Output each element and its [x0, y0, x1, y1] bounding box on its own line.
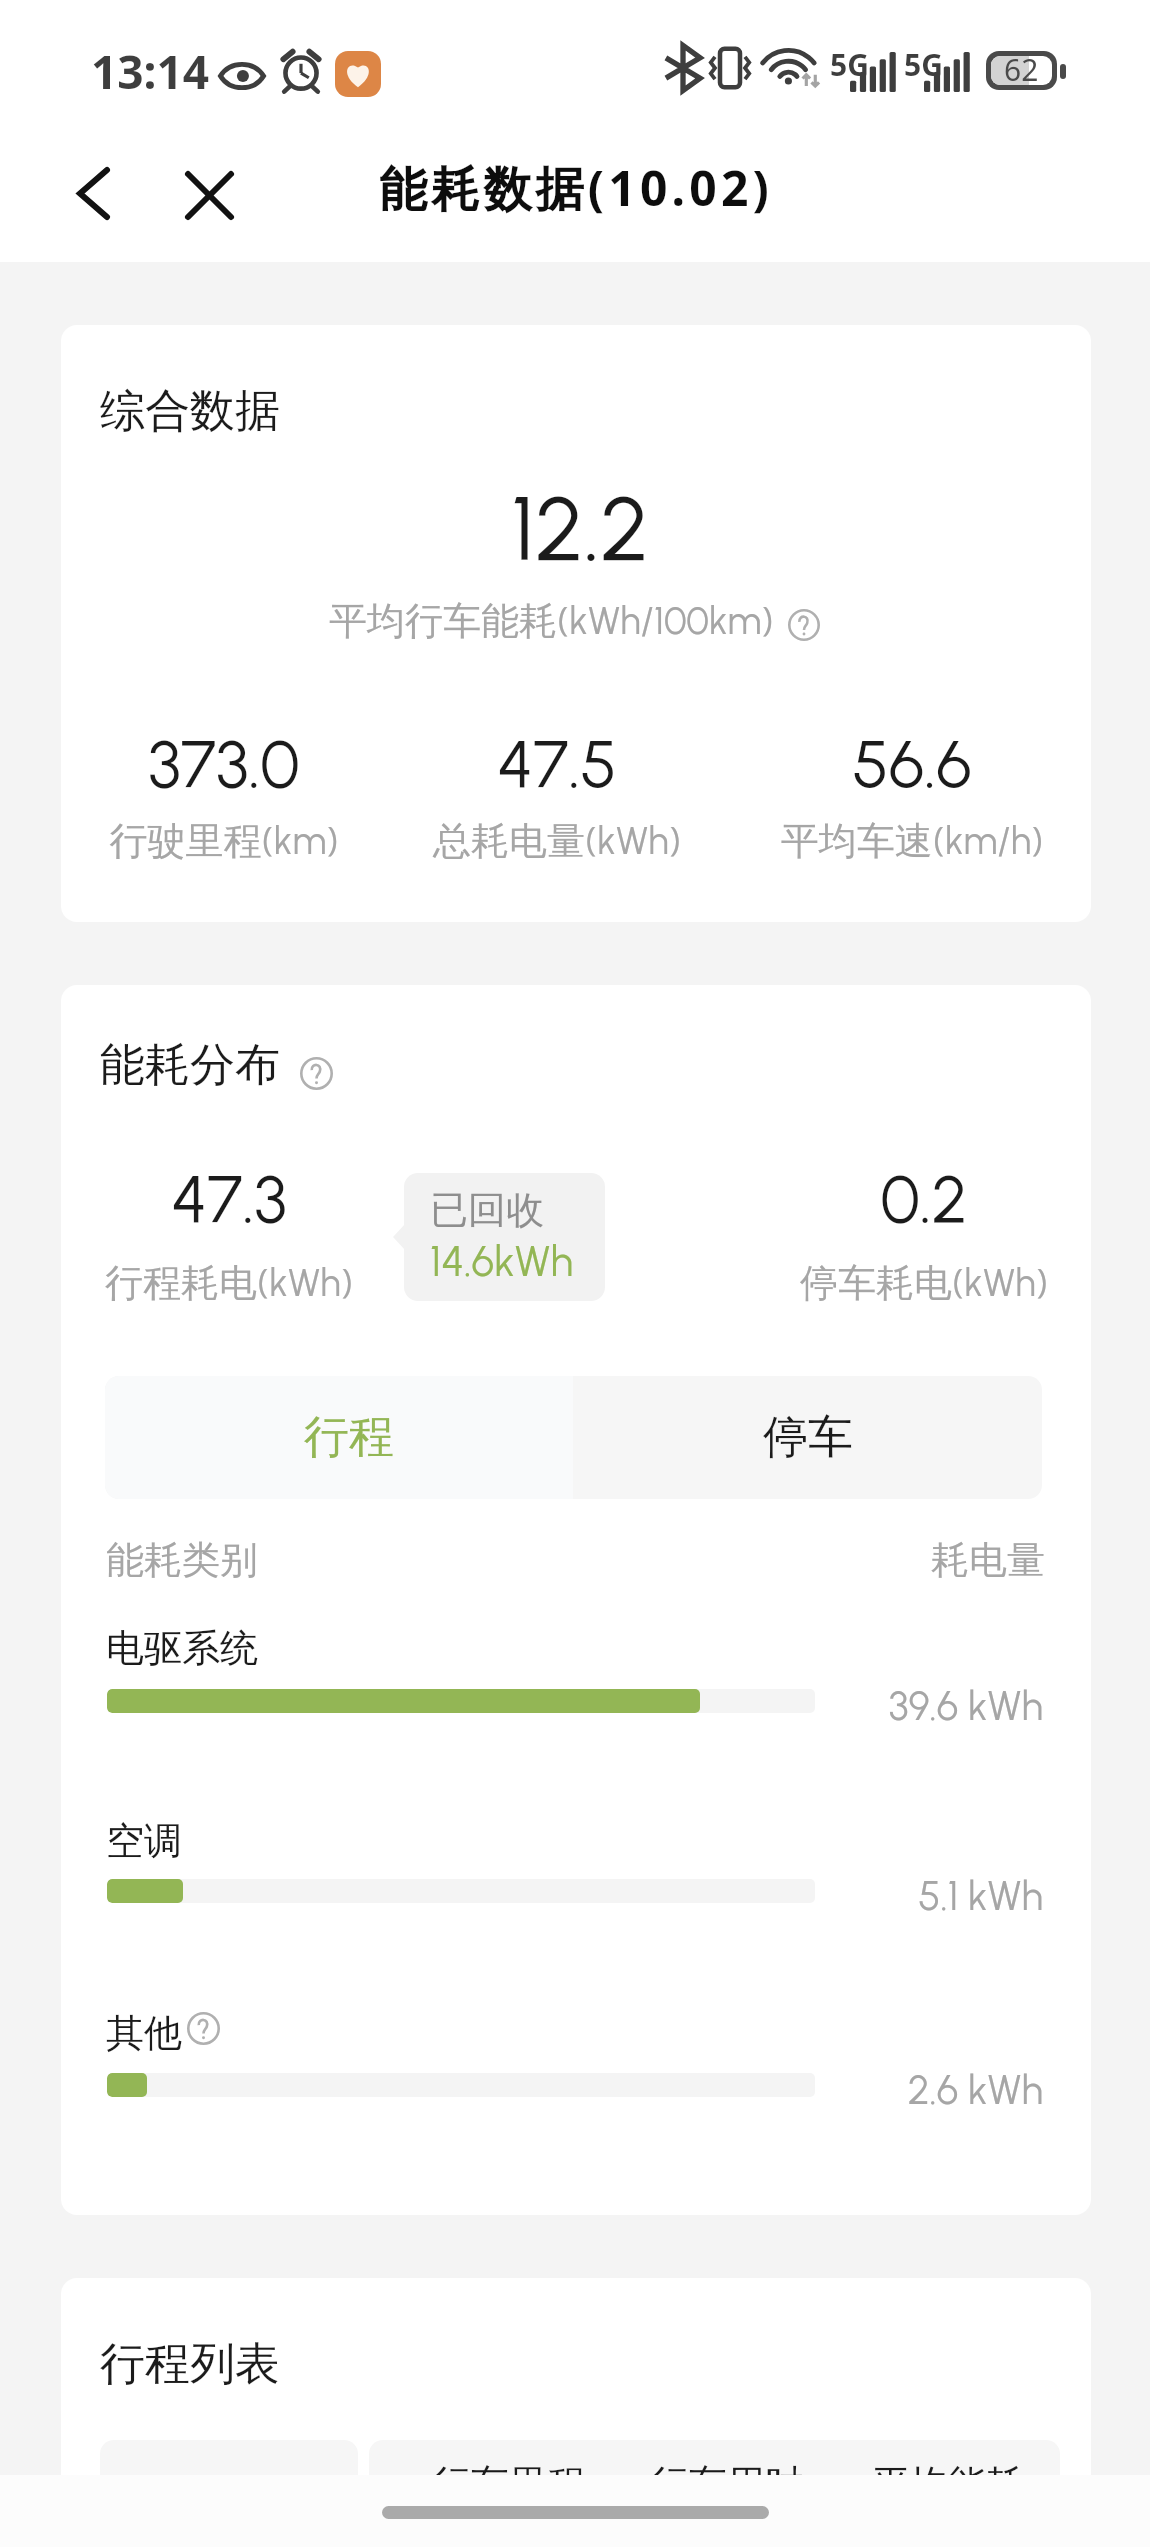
staticText: 能耗类别 — [106, 1536, 258, 1584]
staticText: 2.6 kWh — [61, 2066, 1043, 2114]
staticText: 停车耗电(kWh) — [761, 1259, 1087, 1307]
staticText: 47.3 — [66, 1159, 392, 1238]
staticText: 62 — [1004, 51, 1039, 88]
staticText: 平均车速(km/h) — [749, 817, 1075, 865]
button[interactable]: Back — [50, 150, 136, 236]
staticText: 373.0 — [61, 724, 387, 803]
staticText: 停车 — [763, 1409, 853, 1466]
staticText: 行程 — [304, 1409, 394, 1466]
staticText: 平均行车能耗(kWh/100km) — [329, 597, 774, 645]
staticText: 行车里程 — [433, 2460, 585, 2508]
staticText: 56.6 — [749, 724, 1075, 803]
staticText: 12.2 — [65, 474, 1091, 582]
staticText: 耗电量 — [61, 1536, 1045, 1584]
staticText: 14.6kWh — [430, 1236, 574, 1286]
staticText: 其他 — [106, 2009, 182, 2057]
staticText: 39.6 kWh — [61, 1682, 1043, 1730]
button[interactable]: 行程 — [105, 1376, 573, 1499]
staticText: 13:14 — [91, 40, 210, 103]
button[interactable]: Close — [166, 152, 252, 238]
staticText: 电驱系统 — [106, 1624, 258, 1672]
staticText: 综合数据 — [100, 383, 280, 440]
staticText: 5G — [830, 44, 869, 85]
staticText: 总耗电量(kWh) — [394, 817, 720, 865]
staticText: 已回收 — [430, 1186, 544, 1234]
staticText: 5G — [904, 44, 943, 85]
staticText: 47.5 — [394, 724, 720, 803]
staticText: 平均能耗 — [872, 2460, 1024, 2508]
staticText: 能耗分布 — [100, 1037, 280, 1094]
staticText: 行驶里程(km) — [61, 817, 387, 865]
staticText: 行程耗电(kWh) — [66, 1259, 392, 1307]
staticText: 行车用时 — [651, 2460, 803, 2508]
staticText: 行程列表 — [100, 2336, 280, 2393]
staticText: 5.1 kWh — [61, 1872, 1043, 1920]
button[interactable]: 停车 — [573, 1376, 1042, 1499]
staticText: 空调 — [106, 1817, 182, 1865]
staticText: 能耗数据(10.02) — [379, 155, 774, 221]
staticText: 0.2 — [761, 1159, 1087, 1238]
